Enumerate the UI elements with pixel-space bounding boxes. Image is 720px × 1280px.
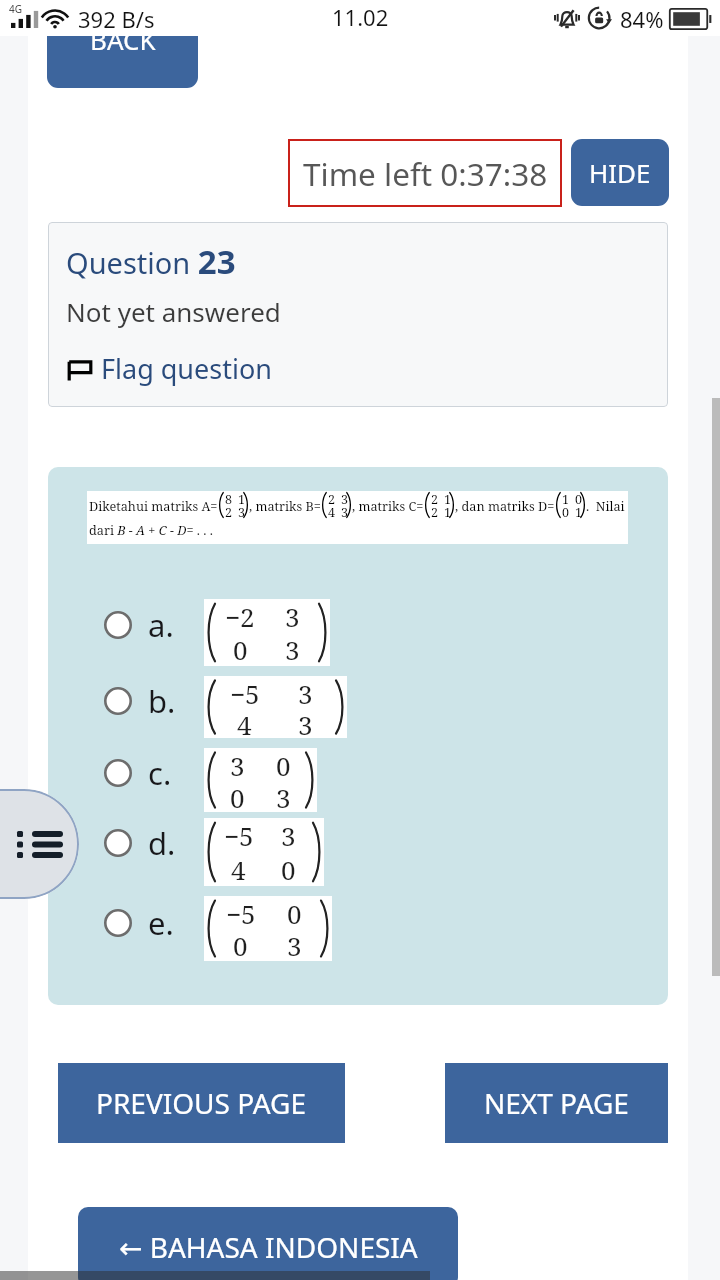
staticText: 84% [620, 4, 664, 34]
staticText: 0 [230, 780, 245, 812]
staticText: b. [148, 680, 176, 722]
staticText: , matriks B= [249, 497, 321, 514]
button[interactable]: Option b. [98, 681, 138, 721]
button[interactable]: NEXT PAGE [445, 1063, 668, 1143]
staticText: 2 [328, 491, 335, 508]
button[interactable]: HIDE [571, 139, 669, 206]
button[interactable]: Option d. [98, 823, 138, 863]
staticText: 0 [233, 632, 248, 666]
staticText: 3 [341, 491, 348, 508]
staticText: NEXT PAGE [484, 1084, 629, 1122]
staticText: 1 [575, 504, 582, 521]
staticText: 2 [431, 491, 438, 508]
staticText: 0 [233, 928, 248, 961]
staticText: Diketahui matriks A= [89, 497, 218, 514]
staticText: , matriks C= [352, 497, 424, 514]
staticText: 3 [230, 748, 245, 780]
staticText: , dan matriks D= [455, 497, 555, 514]
staticText: 4 [231, 852, 246, 886]
staticText: −2 [225, 599, 255, 632]
staticText: Question 23 [66, 239, 236, 284]
staticText: dari B − A + C − D= . . . [89, 521, 213, 538]
button[interactable]: BACK [47, 0, 198, 88]
button[interactable]: Option a. [98, 605, 138, 645]
staticText: 0 [287, 896, 302, 928]
staticText: 3 [276, 780, 291, 812]
staticText: e. [148, 902, 174, 944]
staticText: 4 [328, 504, 335, 521]
staticText: HIDE [589, 155, 651, 190]
button[interactable]: Option c. [98, 753, 138, 793]
staticText: 0 [562, 504, 569, 521]
staticText: Not yet answered [66, 294, 281, 329]
staticText: a. [148, 604, 174, 646]
staticText: PREVIOUS PAGE [96, 1084, 307, 1122]
staticText: 3 [287, 928, 302, 961]
staticText: 11.02 [332, 2, 389, 32]
staticText: 3 [238, 504, 245, 521]
staticText: 3 [298, 707, 313, 738]
button[interactable]: Flag question [65, 350, 272, 387]
staticText: 4G [9, 2, 22, 16]
button[interactable]: Quiz navigation [0, 789, 79, 899]
staticText: 2 [225, 504, 232, 521]
staticText: 3 [298, 676, 313, 707]
staticText: ← BAHASA INDONESIA [119, 1228, 418, 1266]
staticText: 1 [562, 491, 569, 508]
staticText: 3 [285, 632, 300, 666]
staticText: d. [148, 822, 176, 864]
staticText: c. [148, 752, 172, 794]
button[interactable]: ← BAHASA INDONESIA [78, 1207, 458, 1280]
staticText: . Nilai [586, 497, 625, 514]
staticText: 1 [444, 504, 451, 521]
staticText: 0 [281, 852, 296, 886]
staticText: 392 B/s [78, 4, 155, 34]
button[interactable]: PREVIOUS PAGE [58, 1063, 345, 1143]
staticText: 1 [444, 491, 451, 508]
staticText: 1 [238, 491, 245, 508]
staticText: Time left 0:37:38 [303, 152, 548, 195]
staticText: 0 [575, 491, 582, 508]
staticText: 8 [225, 491, 232, 508]
staticText: 0 [276, 748, 291, 780]
staticText: −5 [224, 818, 254, 852]
staticText: 3 [285, 599, 300, 632]
staticText: 4 [237, 707, 252, 738]
staticText: 2 [431, 504, 438, 521]
staticText: Flag question [101, 350, 272, 387]
staticText: −5 [230, 676, 260, 707]
staticText: −5 [226, 896, 256, 928]
staticText: BACK [90, 22, 156, 57]
staticText: 3 [281, 818, 296, 852]
staticText: 3 [341, 504, 348, 521]
button[interactable]: Option e. [98, 903, 138, 943]
